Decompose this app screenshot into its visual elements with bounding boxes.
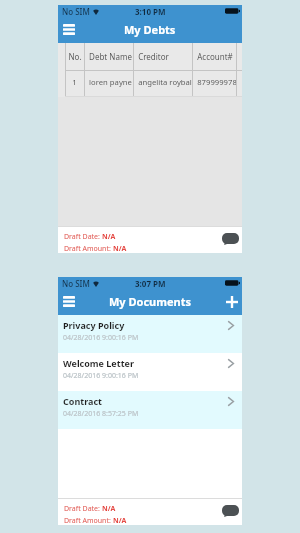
staticText: Creditor <box>138 51 169 62</box>
staticText: Welcome Letter <box>63 357 134 369</box>
button[interactable]: Privacy Policy <box>58 315 242 353</box>
staticText: Draft Amount: <box>64 244 113 253</box>
button[interactable]: Add document <box>220 289 242 315</box>
staticText: My Debts <box>124 22 176 37</box>
staticText: Draft Date: <box>64 504 102 514</box>
staticText: N/A <box>113 516 127 525</box>
staticText: 3:10 PM <box>135 6 166 17</box>
button[interactable]: Chat <box>219 230 241 250</box>
staticText: Debt Name <box>89 51 132 62</box>
staticText: 1 <box>72 77 77 87</box>
button[interactable]: Menu <box>58 17 80 43</box>
button[interactable]: Contract <box>58 391 242 429</box>
staticText: Account# <box>197 51 233 62</box>
staticText: My Documents <box>109 294 192 309</box>
staticText: Privacy Policy <box>63 319 125 331</box>
staticText: 04/28/2016 9:00:16 PM <box>63 333 139 343</box>
staticText: No SIM <box>62 6 90 17</box>
staticText: N/A <box>102 232 116 242</box>
staticText: No SIM <box>62 278 90 289</box>
button[interactable]: Welcome Letter <box>58 353 242 391</box>
button[interactable]: Chat <box>219 502 241 522</box>
staticText: No. <box>68 51 82 62</box>
staticText: 3:07 PM <box>135 278 166 289</box>
staticText: 879999978 <box>197 77 237 87</box>
staticText: N/A <box>113 244 127 253</box>
staticText: Draft Date: <box>64 232 102 242</box>
staticText: Contract <box>63 395 102 407</box>
staticText: N/A <box>102 504 116 514</box>
staticText: 04/28/2016 8:57:25 PM <box>63 409 139 419</box>
button[interactable]: Menu <box>58 289 80 315</box>
staticText: loren payne <box>89 77 132 87</box>
staticText: Draft Amount: <box>64 516 113 525</box>
staticText: 04/28/2016 9:00:16 PM <box>63 371 139 381</box>
staticText: angelita roybal <box>138 77 192 87</box>
